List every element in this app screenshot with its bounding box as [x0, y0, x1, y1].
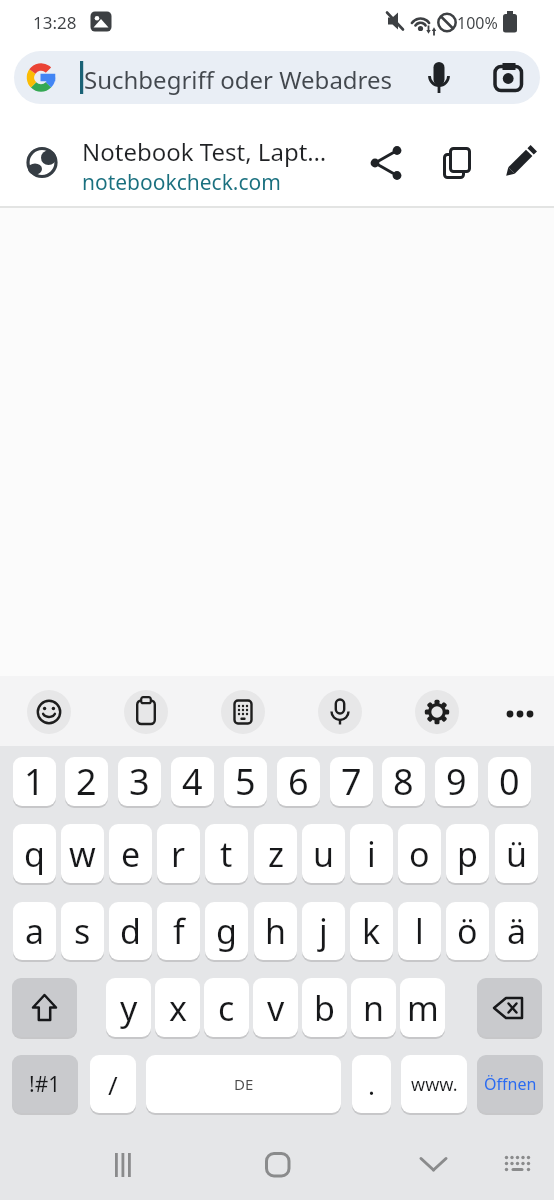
staticText: f	[173, 908, 185, 954]
button[interactable]	[495, 1145, 540, 1190]
button[interactable]: e	[109, 824, 152, 883]
button[interactable]	[247, 1140, 307, 1190]
button[interactable]: c	[204, 978, 249, 1037]
button[interactable]	[360, 133, 415, 189]
button[interactable]: 0	[488, 757, 531, 806]
button[interactable]: i	[350, 824, 393, 883]
staticText: 2	[76, 757, 97, 806]
button[interactable]	[495, 133, 545, 189]
button[interactable]	[403, 1140, 463, 1190]
staticText: 3	[129, 757, 150, 806]
button[interactable]: 7	[330, 757, 373, 806]
button[interactable]: z	[254, 824, 297, 883]
button[interactable]: y	[106, 978, 151, 1037]
button[interactable]: w	[61, 824, 104, 883]
staticText: !#1	[29, 1070, 61, 1099]
button[interactable]: 8	[382, 757, 425, 806]
button[interactable]: d	[109, 902, 152, 960]
button[interactable]: /	[90, 1055, 136, 1113]
button[interactable]	[318, 690, 362, 734]
button[interactable]	[488, 55, 532, 101]
staticText: u	[313, 831, 335, 877]
button[interactable]: k	[350, 902, 393, 960]
button[interactable]: u	[302, 824, 345, 883]
button[interactable]: ä	[495, 902, 538, 960]
staticText: i	[367, 831, 376, 877]
staticText: s	[74, 908, 91, 954]
staticText: v	[267, 985, 285, 1031]
button[interactable]: ö	[446, 902, 489, 960]
button[interactable]	[415, 690, 459, 734]
button[interactable]: 1	[13, 757, 56, 806]
button[interactable]: b	[302, 978, 347, 1037]
staticText: z	[268, 831, 284, 877]
staticText: g	[216, 908, 237, 954]
button[interactable]: 5	[224, 757, 267, 806]
button[interactable]	[477, 978, 542, 1037]
staticText: 4	[182, 757, 203, 806]
button[interactable]: 3	[118, 757, 161, 806]
button[interactable]: g	[205, 902, 248, 960]
button[interactable]: www.	[401, 1055, 467, 1113]
staticText: 8	[393, 757, 414, 806]
button[interactable]: r	[157, 824, 200, 883]
staticText: Suchbegriff oder Webadres	[84, 63, 393, 96]
button[interactable]	[500, 690, 544, 734]
staticText: DE	[234, 1074, 254, 1094]
button[interactable]: p	[446, 824, 489, 883]
staticText: p	[457, 831, 478, 877]
button[interactable]	[420, 55, 460, 101]
button[interactable]: s	[61, 902, 104, 960]
staticText: r	[171, 831, 186, 877]
staticText: c	[218, 985, 235, 1031]
button[interactable]: q	[13, 824, 56, 883]
staticText: x	[169, 985, 187, 1031]
button[interactable]: j	[302, 902, 345, 960]
button[interactable]: DE	[146, 1055, 341, 1113]
button[interactable]	[221, 690, 265, 734]
staticText: 1	[24, 757, 45, 806]
staticText: 5	[235, 757, 256, 806]
button[interactable]	[124, 690, 168, 734]
button[interactable]: t	[205, 824, 248, 883]
staticText: www.	[411, 1072, 458, 1097]
button[interactable]	[14, 51, 540, 104]
staticText: b	[314, 985, 335, 1031]
staticText: ü	[506, 831, 528, 877]
button[interactable]	[12, 978, 77, 1037]
button[interactable]: x	[155, 978, 200, 1037]
button[interactable]: l	[398, 902, 441, 960]
staticText: Notebook Test, Lapt…	[82, 135, 327, 168]
button[interactable]: n	[351, 978, 396, 1037]
button[interactable]	[27, 690, 71, 734]
button[interactable]: h	[254, 902, 297, 960]
staticText: 7	[341, 757, 362, 806]
button[interactable]: o	[398, 824, 441, 883]
staticText: o	[409, 831, 430, 877]
staticText: 6	[288, 757, 309, 806]
staticText: y	[120, 985, 138, 1031]
button[interactable]: 4	[171, 757, 214, 806]
staticText: n	[363, 985, 385, 1031]
button[interactable]: Öffnen	[477, 1055, 543, 1113]
button[interactable]: 9	[435, 757, 478, 806]
staticText: 13:28	[33, 11, 77, 34]
staticText: h	[265, 908, 287, 954]
button[interactable]: v	[253, 978, 298, 1037]
button[interactable]	[0, 115, 360, 206]
button[interactable]: ü	[495, 824, 538, 883]
staticText: /	[108, 1067, 118, 1102]
button[interactable]: .	[352, 1055, 391, 1113]
staticText: d	[120, 908, 141, 954]
button[interactable]: m	[400, 978, 445, 1037]
button[interactable]	[428, 133, 483, 189]
staticText: 0	[499, 757, 520, 806]
staticText: ä	[507, 908, 527, 954]
button[interactable]: a	[13, 902, 56, 960]
staticText: .	[368, 1067, 375, 1102]
button[interactable]: f	[157, 902, 200, 960]
button[interactable]: 2	[65, 757, 108, 806]
button[interactable]	[92, 1140, 152, 1190]
button[interactable]: !#1	[12, 1055, 78, 1113]
button[interactable]: 6	[277, 757, 320, 806]
